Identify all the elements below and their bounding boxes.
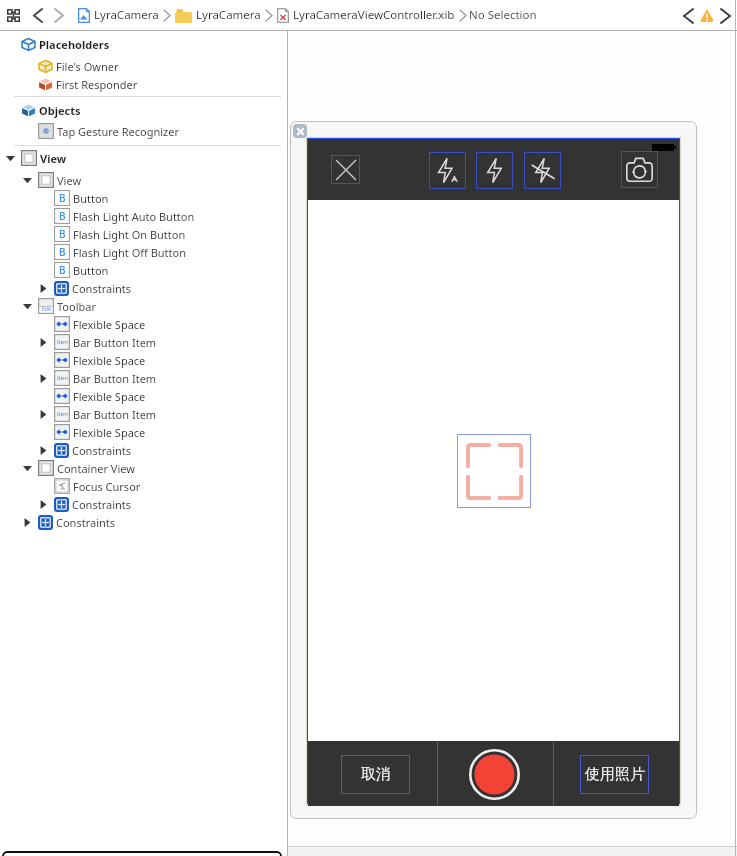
staticText: Placeholders bbox=[39, 37, 110, 52]
staticText: 取消 bbox=[361, 765, 391, 784]
button[interactable]: Flexible Space bbox=[0, 351, 287, 369]
staticText: Flexible Space bbox=[73, 317, 146, 332]
staticText: Item bbox=[57, 375, 68, 382]
staticText: Constraints bbox=[72, 497, 132, 512]
button[interactable]: Constraints bbox=[0, 441, 287, 459]
button[interactable]: Constraints bbox=[0, 513, 287, 531]
button[interactable]: Warnings bbox=[697, 4, 716, 27]
staticText: Objects bbox=[39, 103, 81, 118]
button[interactable]: Objects bbox=[0, 101, 287, 119]
staticText: Flash Light On Button bbox=[73, 227, 186, 242]
staticText: View bbox=[57, 173, 82, 188]
button[interactable]: Flexible Space bbox=[0, 387, 287, 405]
staticText: Flash Light Auto Button bbox=[73, 209, 195, 224]
button[interactable]: Forward bbox=[48, 4, 69, 27]
staticText: LyraCamera bbox=[94, 7, 159, 23]
button[interactable]: First Responder bbox=[0, 75, 287, 93]
button[interactable]: B bbox=[0, 225, 287, 243]
staticText: Bar Button Item bbox=[73, 371, 157, 386]
button[interactable]: Flexible Space bbox=[0, 423, 287, 441]
staticText: Bar Button Item bbox=[73, 407, 157, 422]
button[interactable]: Focus Cursor bbox=[0, 477, 287, 495]
button[interactable]: 使用照片 bbox=[580, 755, 649, 794]
staticText: LyraCameraViewController.xib bbox=[293, 7, 455, 23]
button[interactable]: B bbox=[0, 261, 287, 279]
staticText: 使用照片 bbox=[585, 765, 645, 784]
button[interactable]: File's Owner bbox=[0, 57, 287, 75]
button[interactable]: LyraCamera bbox=[173, 7, 263, 23]
staticText: No Selection bbox=[469, 7, 537, 23]
staticText: B bbox=[59, 263, 66, 277]
button[interactable]: Item bbox=[0, 369, 287, 387]
button[interactable]: B bbox=[0, 189, 287, 207]
staticText: Flexible Space bbox=[73, 389, 146, 404]
staticText: Flash Light Off Button bbox=[73, 245, 187, 260]
button[interactable]: View bbox=[0, 171, 287, 189]
staticText: Button bbox=[73, 263, 109, 278]
button[interactable]: Tap Gesture Recognizer bbox=[0, 122, 287, 140]
staticText: Toolbar bbox=[57, 299, 96, 314]
button[interactable]: Placeholders bbox=[0, 35, 287, 53]
staticText: Button bbox=[73, 191, 109, 206]
button[interactable]: Constraints bbox=[0, 495, 287, 513]
button[interactable]: Flexible Space bbox=[0, 315, 287, 333]
staticText: View bbox=[40, 151, 67, 166]
staticText: First Responder bbox=[56, 77, 138, 92]
staticText: B bbox=[59, 245, 66, 259]
staticText: LyraCamera bbox=[196, 7, 261, 23]
button[interactable]: View bbox=[0, 149, 287, 167]
button[interactable]: Back bbox=[27, 4, 48, 27]
button[interactable]: Flash auto bbox=[429, 152, 466, 189]
staticText: Edit bbox=[42, 306, 51, 313]
button[interactable]: Flash off bbox=[524, 152, 561, 189]
button[interactable]: Editor options bbox=[1, 4, 26, 27]
staticText: B bbox=[59, 227, 66, 241]
staticText: B bbox=[59, 191, 66, 205]
button[interactable]: Filter bbox=[2, 851, 282, 856]
button[interactable]: Container View bbox=[0, 459, 287, 477]
staticText: Constraints bbox=[72, 443, 132, 458]
staticText: Constraints bbox=[56, 515, 116, 530]
staticText: Item bbox=[57, 339, 68, 346]
button[interactable]: LyraCameraViewController.xib bbox=[275, 7, 457, 23]
button[interactable]: B bbox=[0, 207, 287, 225]
staticText: File's Owner bbox=[56, 59, 119, 74]
button[interactable]: Item bbox=[0, 333, 287, 351]
button[interactable]: Previous issue bbox=[680, 4, 697, 27]
staticText: Item bbox=[57, 411, 68, 418]
staticText: Flexible Space bbox=[73, 353, 146, 368]
button[interactable]: Switch camera bbox=[621, 151, 658, 188]
button[interactable]: B bbox=[0, 243, 287, 261]
button[interactable]: Constraints bbox=[0, 279, 287, 297]
button[interactable]: Next issue bbox=[716, 4, 735, 27]
button[interactable]: Shutter bbox=[469, 749, 520, 800]
staticText: Container View bbox=[57, 461, 135, 476]
staticText: Constraints bbox=[72, 281, 132, 296]
staticText: B bbox=[59, 209, 66, 223]
button[interactable]: Close preview bbox=[293, 124, 307, 138]
button[interactable]: Close bbox=[331, 155, 360, 184]
button[interactable]: LyraCamera bbox=[76, 7, 161, 23]
staticText: Bar Button Item bbox=[73, 335, 157, 350]
button[interactable]: Edit bbox=[0, 297, 287, 315]
staticText: Tap Gesture Recognizer bbox=[57, 124, 179, 139]
button[interactable]: 取消 bbox=[341, 755, 410, 794]
button[interactable]: Item bbox=[0, 405, 287, 423]
staticText: Focus Cursor bbox=[73, 479, 141, 494]
staticText: Flexible Space bbox=[73, 425, 146, 440]
button[interactable]: Flash on bbox=[476, 152, 513, 189]
